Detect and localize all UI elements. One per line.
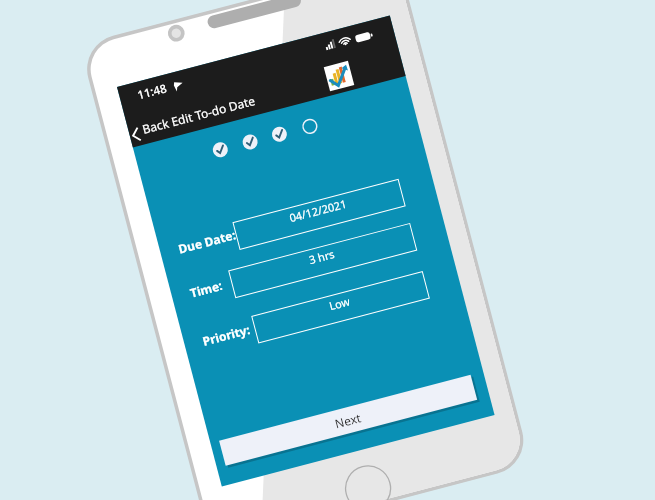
button[interactable]: Edit To-do Date phone mockup	[0, 0, 655, 500]
